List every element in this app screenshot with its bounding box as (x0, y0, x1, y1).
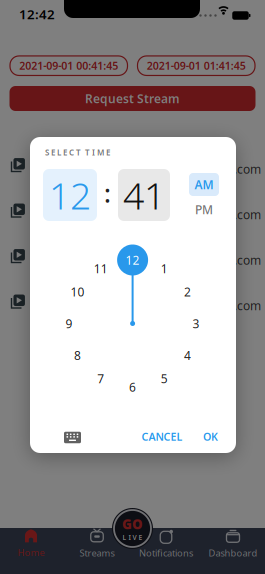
staticText: Request Stream (85, 90, 180, 106)
staticText: AM (194, 176, 213, 192)
staticText: Home (17, 546, 44, 559)
staticText: : (104, 176, 111, 210)
button[interactable]: Minute (118, 169, 170, 221)
staticText: Dashboard (208, 547, 257, 559)
staticText: https://stream-1.broadcast.cdn-live.com (39, 161, 261, 177)
button[interactable]: Switch to text input (63, 431, 81, 443)
button[interactable]: Notifications (139, 528, 193, 560)
button[interactable]: https://stream-1.broadcast.cdn-live.com (0, 142, 265, 188)
button[interactable]: Home (6, 528, 56, 560)
staticText: Streams (79, 547, 114, 559)
staticText: 2 (184, 284, 191, 300)
button[interactable]: PM (189, 198, 219, 221)
staticText: 5 (161, 370, 168, 386)
button[interactable]: Dashboard (207, 528, 259, 560)
staticText: 9 (66, 315, 73, 331)
staticText: L I V E (122, 533, 142, 542)
button[interactable]: https://stream-2.broadcast.cdn-live.com (0, 188, 265, 233)
staticText: S E L E C T T I M E (45, 147, 110, 158)
button[interactable]: 2021-09-01 01:41:45 (137, 56, 255, 75)
staticText: GO (122, 515, 143, 533)
staticText: 11 (94, 260, 108, 276)
staticText: 12 (49, 170, 91, 220)
button[interactable]: Request Stream (9, 86, 255, 111)
button[interactable]: AM (189, 173, 219, 196)
staticText: 7 (97, 370, 104, 386)
staticText: 41 (123, 170, 165, 220)
button[interactable]: https://stream-4.broadcast.cdn-live.com (0, 279, 265, 324)
staticText: OK (203, 429, 218, 444)
button[interactable]: Go Live (112, 508, 153, 549)
button[interactable]: CANCEL (141, 429, 182, 444)
staticText: 10 (71, 284, 85, 300)
staticText: 2021-09-01 00:41:45 (19, 59, 118, 73)
staticText: 12 (126, 252, 140, 268)
button[interactable]: Streams (72, 528, 122, 560)
staticText: 3 (193, 315, 200, 331)
staticText: 4 (184, 347, 191, 363)
staticText: 2021-09-01 01:41:45 (147, 59, 246, 73)
staticText: https://stream-3.broadcast.cdn-live.com (39, 252, 261, 268)
staticText: CANCEL (141, 429, 182, 444)
button[interactable]: OK (203, 429, 218, 444)
staticText: 12:42 (19, 5, 55, 23)
staticText: 6 (129, 379, 136, 395)
button[interactable]: Hour (43, 169, 97, 221)
staticText: PM (195, 201, 213, 217)
button[interactable]: https://stream-3.broadcast.cdn-live.com (0, 233, 265, 279)
staticText: 1 (161, 260, 168, 276)
staticText: 8 (74, 347, 81, 363)
staticText: https://stream-2.broadcast.cdn-live.com (39, 206, 261, 222)
button[interactable]: 2021-09-01 00:41:45 (10, 56, 127, 75)
staticText: Notifications (139, 547, 193, 559)
staticText: https://stream-4.broadcast.cdn-live.com (39, 297, 261, 313)
